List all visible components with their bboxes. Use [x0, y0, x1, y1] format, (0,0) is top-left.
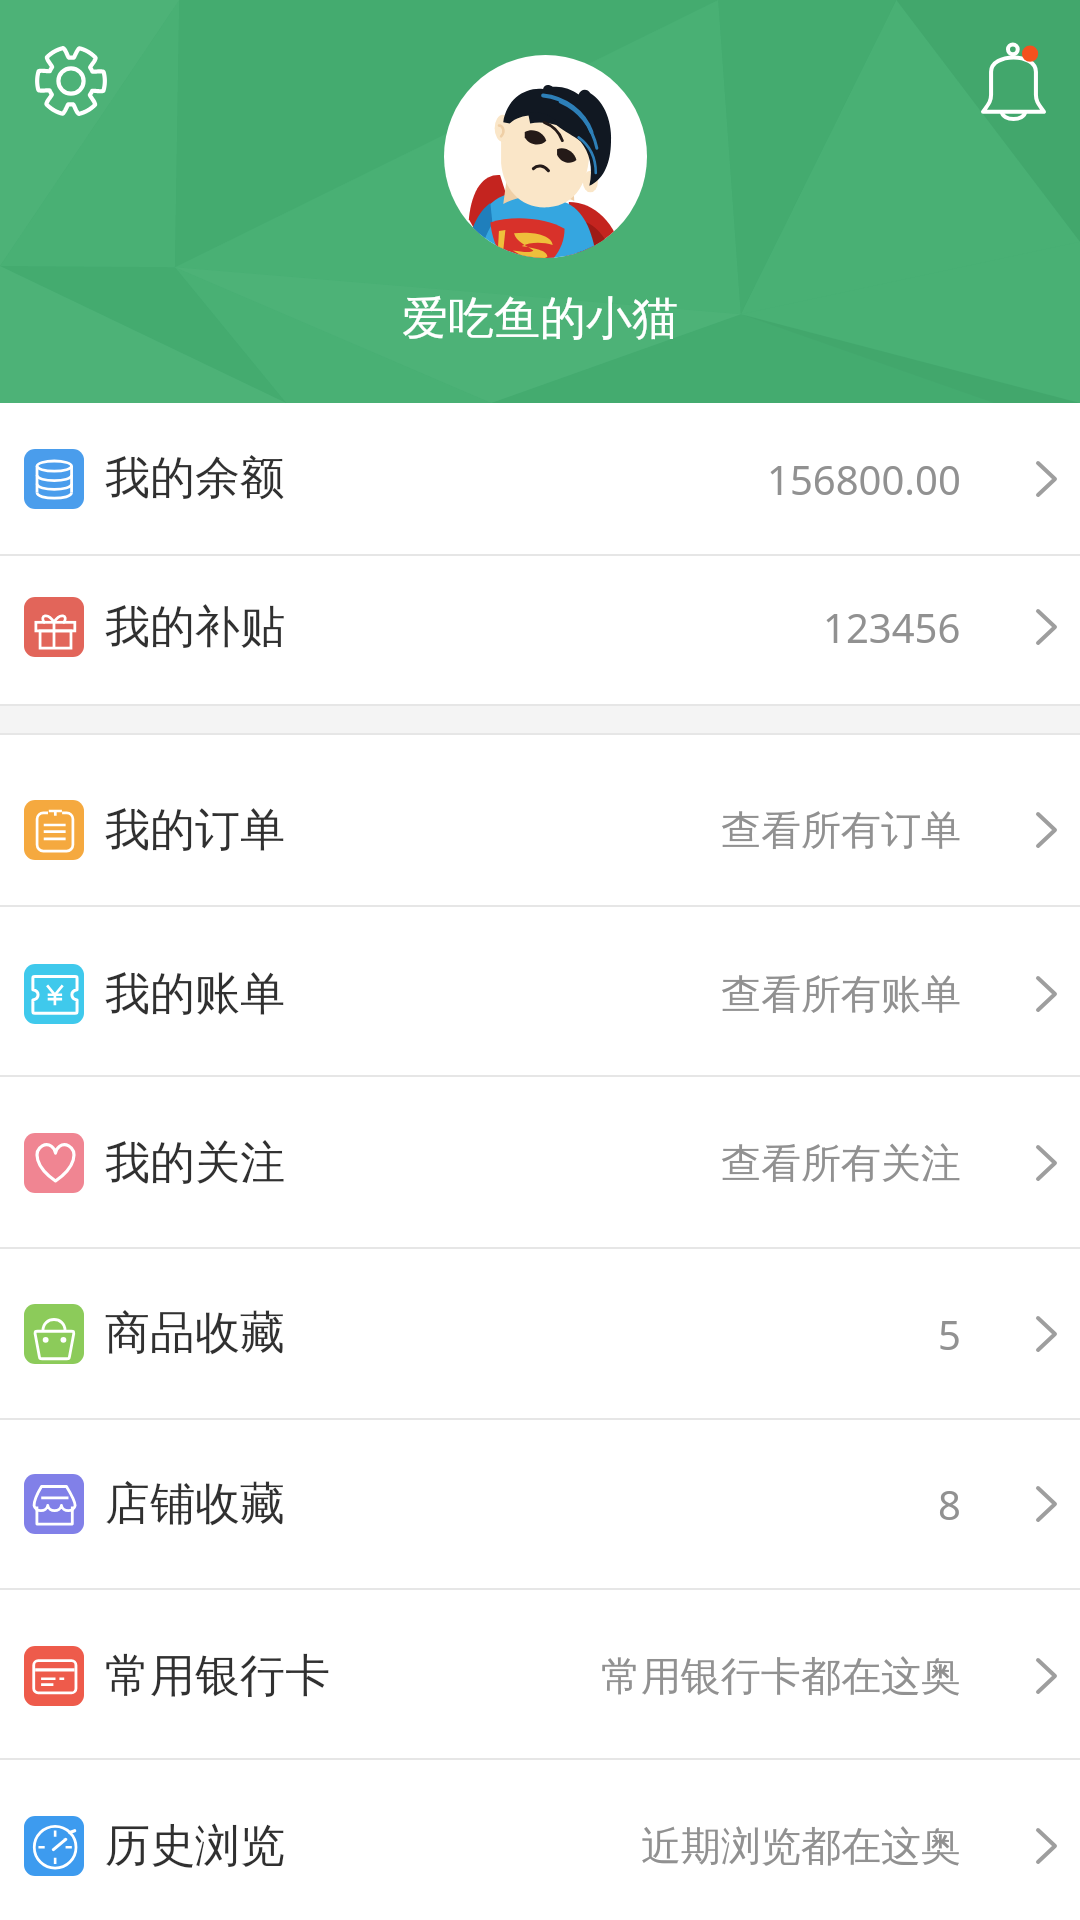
- staticText: 商品收藏: [105, 1305, 285, 1362]
- button[interactable]: Avatar: [444, 55, 647, 258]
- button[interactable]: Settings: [35, 45, 107, 117]
- staticText: 爱吃鱼的小猫: [402, 290, 678, 348]
- staticText: 常用银行卡都在这奥: [601, 1651, 961, 1701]
- staticText: 查看所有关注: [721, 1138, 961, 1188]
- staticText: 我的余额: [105, 450, 285, 507]
- button[interactable]: 店铺收藏: [0, 1420, 1080, 1588]
- button[interactable]: 我的余额: [0, 403, 1080, 554]
- button[interactable]: 我的补贴: [0, 556, 1080, 704]
- button[interactable]: Notifications: [981, 43, 1046, 117]
- button[interactable]: 我的订单: [0, 735, 1080, 905]
- staticText: 我的订单: [105, 802, 285, 859]
- staticText: 我的账单: [105, 966, 285, 1023]
- staticText: 常用银行卡: [105, 1648, 330, 1705]
- button[interactable]: 商品收藏: [0, 1249, 1080, 1418]
- staticText: 店铺收藏: [105, 1476, 285, 1533]
- staticText: 查看所有账单: [721, 969, 961, 1019]
- button[interactable]: 历史浏览: [0, 1760, 1080, 1920]
- staticText: 8: [938, 1477, 961, 1531]
- staticText: 查看所有订单: [721, 805, 961, 855]
- staticText: 5: [938, 1307, 961, 1361]
- staticText: 我的关注: [105, 1135, 285, 1192]
- button[interactable]: 我的账单: [0, 907, 1080, 1075]
- staticText: 123456: [823, 600, 961, 654]
- button[interactable]: 常用银行卡: [0, 1590, 1080, 1758]
- staticText: 156800.00: [767, 452, 961, 506]
- staticText: 我的补贴: [105, 599, 285, 656]
- button[interactable]: 我的关注: [0, 1077, 1080, 1247]
- staticText: 历史浏览: [105, 1818, 285, 1875]
- staticText: 近期浏览都在这奥: [641, 1821, 961, 1871]
